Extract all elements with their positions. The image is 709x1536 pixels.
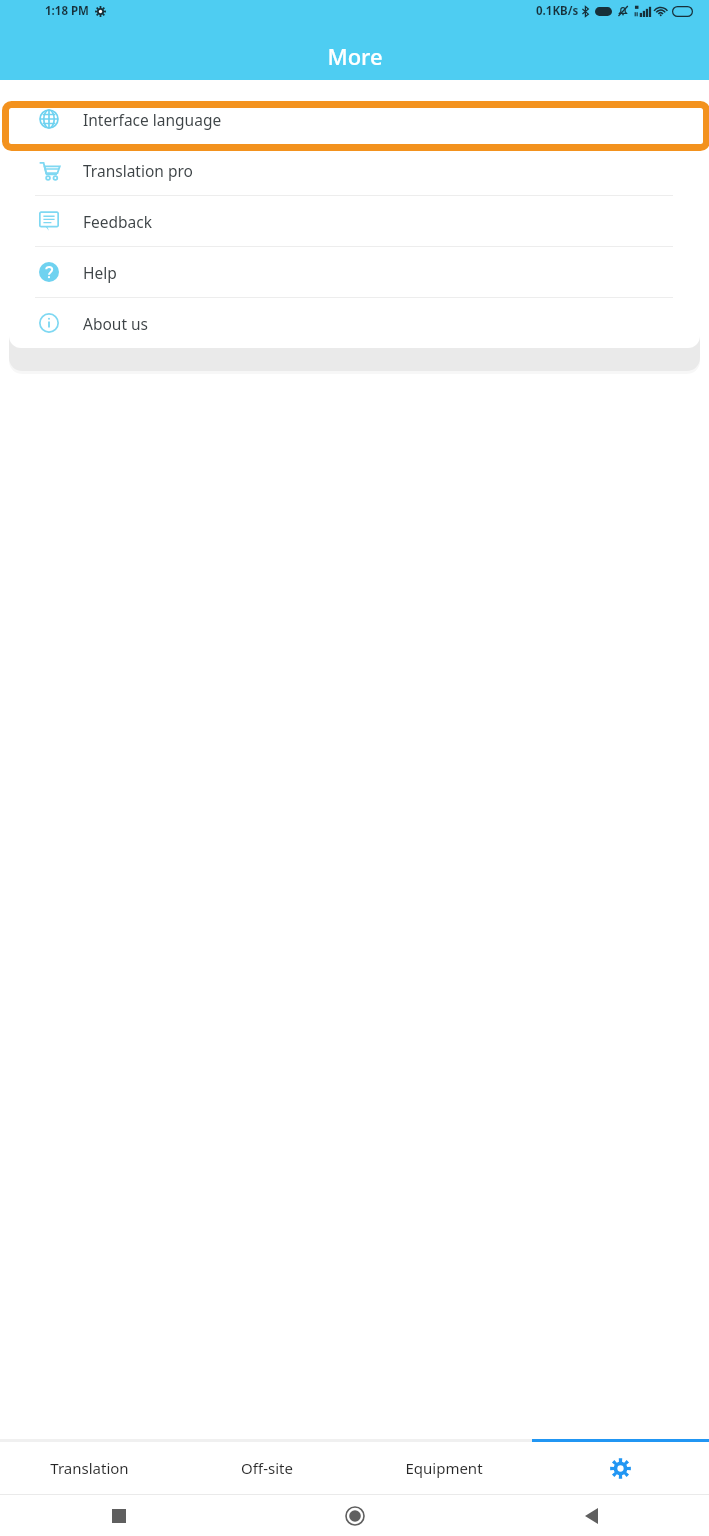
button[interactable]: Home	[237, 1495, 473, 1536]
button[interactable]: Back	[473, 1495, 709, 1536]
staticText: 0.1KB/s	[536, 3, 579, 19]
button[interactable]: Help	[9, 247, 700, 297]
button[interactable]: Off-site	[178, 1442, 355, 1494]
staticText: About us	[83, 313, 149, 334]
button[interactable]: Interface language	[9, 94, 700, 144]
staticText: More	[327, 41, 383, 71]
staticText: Translation	[50, 1458, 129, 1478]
button[interactable]: Settings	[532, 1442, 709, 1494]
staticText: Equipment	[405, 1458, 483, 1478]
button[interactable]: Recent apps	[0, 1495, 237, 1536]
staticText: 1:18 PM	[45, 3, 89, 19]
staticText: Help	[83, 262, 117, 283]
button[interactable]: About us	[9, 298, 700, 348]
staticText: Interface language	[83, 109, 222, 130]
staticText: Feedback	[83, 211, 153, 232]
button[interactable]: Equipment	[355, 1442, 532, 1494]
button[interactable]: Translation	[0, 1442, 178, 1494]
button[interactable]: Feedback	[9, 196, 700, 246]
button[interactable]: Translation pro	[9, 145, 700, 195]
staticText: Translation pro	[83, 160, 193, 181]
staticText: Off-site	[241, 1458, 293, 1478]
